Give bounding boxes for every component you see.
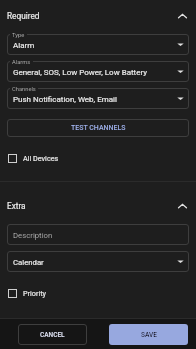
button[interactable]: Extra (0, 189, 196, 222)
button[interactable] (7, 61, 189, 82)
staticText: General, SOS, Low Power, Low Battery (13, 68, 175, 77)
button[interactable] (7, 224, 189, 245)
button[interactable] (7, 251, 189, 272)
button[interactable]: SAVE (109, 324, 188, 345)
staticText: Description (13, 231, 184, 240)
button[interactable]: TEST CHANNELS (7, 119, 189, 137)
button[interactable] (7, 88, 189, 109)
staticText: Push Notification, Web, Email (13, 95, 175, 104)
staticText: Alarms (12, 59, 31, 66)
button[interactable]: Required (0, 0, 196, 32)
staticText: SAVE (141, 331, 157, 339)
staticText: Channels (12, 86, 36, 93)
other: Collapse Required (178, 13, 187, 19)
other: Collapse Extra (178, 203, 187, 209)
button[interactable]: Priority (0, 284, 196, 302)
staticText: Extra (7, 201, 26, 211)
button[interactable] (7, 34, 189, 55)
staticText: Alarm (13, 41, 175, 50)
button[interactable]: All Devices (0, 149, 196, 167)
staticText: Required (7, 11, 40, 21)
staticText: Priority (23, 289, 46, 297)
staticText: TEST CHANNELS (71, 124, 126, 132)
staticText: Calendar (13, 258, 175, 267)
staticText: CANCEL (40, 331, 65, 339)
staticText: Type (12, 32, 25, 39)
button[interactable]: CANCEL (18, 324, 87, 345)
staticText: All Devices (23, 154, 59, 162)
